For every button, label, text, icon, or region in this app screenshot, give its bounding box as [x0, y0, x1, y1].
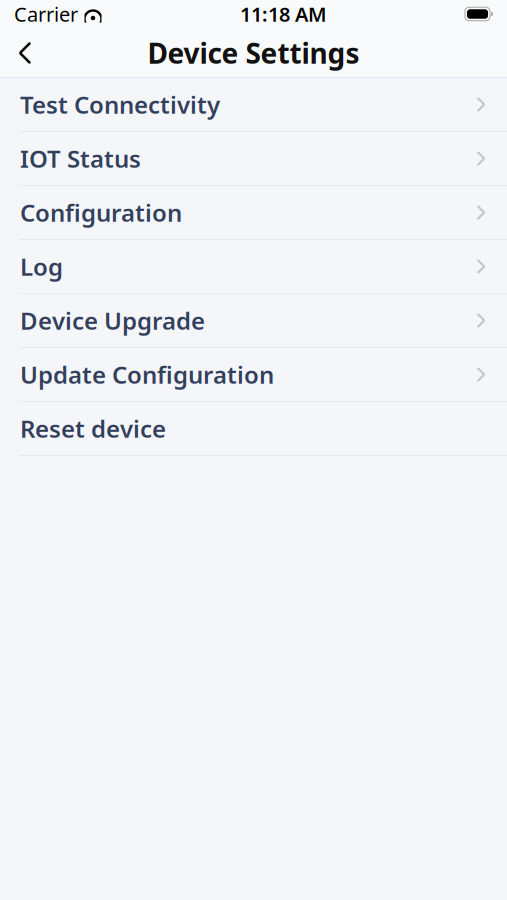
- staticText: 11:18 AM: [240, 1, 327, 27]
- button[interactable]: Update Configuration: [0, 348, 507, 401]
- button[interactable]: IOT Status: [0, 132, 507, 185]
- button[interactable]: Log: [0, 240, 507, 293]
- button[interactable]: Test Connectivity: [0, 78, 507, 131]
- button[interactable]: Reset device: [0, 402, 507, 455]
- staticText: Log: [20, 251, 63, 282]
- staticText: Test Connectivity: [20, 89, 220, 120]
- staticText: Device Settings: [147, 34, 359, 72]
- staticText: Device Upgrade: [20, 305, 205, 336]
- button[interactable]: Back: [0, 28, 50, 78]
- staticText: IOT Status: [20, 143, 141, 174]
- staticText: Carrier: [14, 1, 78, 27]
- button[interactable]: Configuration: [0, 186, 507, 239]
- staticText: Reset device: [20, 413, 166, 444]
- staticText: Update Configuration: [20, 359, 274, 390]
- button[interactable]: Device Upgrade: [0, 294, 507, 347]
- staticText: Configuration: [20, 197, 182, 228]
